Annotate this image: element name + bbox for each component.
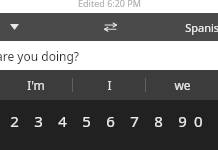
- staticText: 9: [178, 111, 187, 131]
- staticText: are you doing?: [0, 48, 79, 64]
- button[interactable]: 8: [146, 108, 170, 134]
- button[interactable]: we: [146, 70, 218, 100]
- button[interactable]: 7: [122, 108, 146, 134]
- button[interactable]: 4: [50, 108, 74, 134]
- button[interactable]: Language dropdown: [6, 19, 22, 35]
- button[interactable]: 5: [74, 108, 98, 134]
- button[interactable]: Spanish: [185, 20, 218, 35]
- button[interactable]: 6: [98, 108, 122, 134]
- staticText: 0: [194, 111, 196, 131]
- button[interactable]: 9: [170, 108, 194, 134]
- button[interactable]: I'm: [0, 70, 72, 100]
- staticText: Edited 6:20 PM: [78, 0, 141, 9]
- staticText: 8: [154, 111, 163, 131]
- staticText: 6: [106, 111, 115, 131]
- staticText: I: [107, 77, 112, 93]
- staticText: 2: [10, 111, 19, 131]
- staticText: 5: [82, 111, 91, 131]
- staticText: 4: [58, 111, 67, 131]
- button[interactable]: 2: [2, 108, 26, 134]
- staticText: we: [174, 77, 191, 93]
- button[interactable]: Swap languages: [101, 18, 119, 36]
- staticText: Spanish: [185, 20, 218, 35]
- button[interactable]: I: [73, 70, 145, 100]
- staticText: 3: [34, 111, 43, 131]
- staticText: I'm: [27, 77, 45, 93]
- staticText: 7: [130, 111, 139, 131]
- button[interactable]: 3: [26, 108, 50, 134]
- button[interactable]: 0: [194, 108, 196, 134]
